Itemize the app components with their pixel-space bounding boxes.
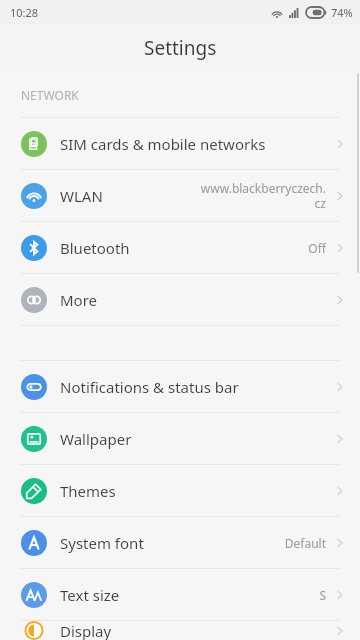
staticText: S bbox=[319, 587, 326, 603]
staticText: Bluetooth bbox=[60, 238, 130, 258]
button[interactable]: WLAN bbox=[0, 170, 360, 221]
staticText: Default bbox=[284, 535, 326, 551]
button[interactable]: Display bbox=[0, 621, 360, 640]
button[interactable]: Wallpaper bbox=[0, 413, 360, 464]
staticText: More bbox=[60, 290, 98, 310]
staticText: www.blackberryczech.cz bbox=[198, 180, 326, 211]
staticText: Display bbox=[60, 621, 112, 640]
staticText: WLAN bbox=[60, 186, 103, 206]
staticText: Settings bbox=[144, 35, 217, 61]
staticText: Off bbox=[308, 240, 326, 256]
button[interactable]: SIM cards & mobile networks bbox=[0, 118, 360, 169]
staticText: 74% bbox=[331, 5, 353, 20]
button[interactable]: Bluetooth bbox=[0, 222, 360, 273]
button[interactable]: Themes bbox=[0, 465, 360, 516]
button[interactable]: Notifications & status bar bbox=[0, 361, 360, 412]
staticText: Text size bbox=[60, 585, 120, 605]
staticText: System font bbox=[60, 533, 144, 553]
staticText: Wallpaper bbox=[60, 429, 132, 449]
staticText: SIM cards & mobile networks bbox=[60, 134, 266, 154]
staticText: NETWORK bbox=[21, 87, 79, 103]
staticText: Themes bbox=[60, 481, 116, 501]
button[interactable]: More bbox=[0, 274, 360, 325]
button[interactable]: Text size bbox=[0, 569, 360, 620]
staticText: Notifications & status bar bbox=[60, 377, 239, 397]
button[interactable]: System font bbox=[0, 517, 360, 568]
staticText: 10:28 bbox=[10, 5, 39, 20]
